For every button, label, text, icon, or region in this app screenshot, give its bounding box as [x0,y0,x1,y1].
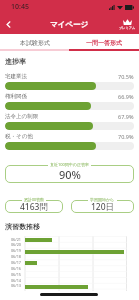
staticText: 06/20 [3,242,21,247]
staticText: 70.9% [118,133,134,140]
button[interactable]: 90% [5,162,134,183]
staticText: 06/14 [3,278,21,283]
button[interactable]: 4163問 [5,197,63,213]
staticText: 06/17 [3,260,21,265]
staticText: 67.9% [118,113,134,120]
staticText: 06/15 [3,272,21,277]
staticText: 演習数推移 [5,222,40,231]
staticText: 税・その他 [5,133,33,140]
staticText: 累計回答数 [24,197,44,202]
staticText: 10:45 [11,2,29,12]
button[interactable]: 120日 [71,197,134,213]
button[interactable]: Premium plan [119,19,136,30]
staticText: 06/16 [3,266,21,271]
staticText: 66.9% [118,93,134,100]
staticText: 学習開始から [90,197,115,202]
staticText: 70.5% [118,73,134,80]
staticText: 06/19 [3,248,21,253]
staticText: 06/18 [3,254,21,259]
staticText: 本試験形式 [20,39,50,47]
staticText: 90% [59,167,81,182]
staticText: 進捗率 [5,57,26,66]
button[interactable]: Back [0,16,16,32]
staticText: 宅建業法 [5,73,27,80]
staticText: マイページ [50,20,89,29]
staticText: プレミアム [119,26,136,30]
staticText: 120日 [91,201,115,213]
button[interactable]: 一問一答形式 [69,34,139,51]
staticText: 一問一答形式 [86,39,122,47]
staticText: 06/21 [3,237,21,242]
staticText: 法令上の制限 [5,113,39,120]
staticText: 直近100問中の正答率 [50,162,89,167]
staticText: 4163問 [20,201,48,213]
staticText: 権利関係 [5,93,27,100]
button[interactable]: 本試験形式 [0,34,69,51]
staticText: 06/13 [3,283,21,288]
